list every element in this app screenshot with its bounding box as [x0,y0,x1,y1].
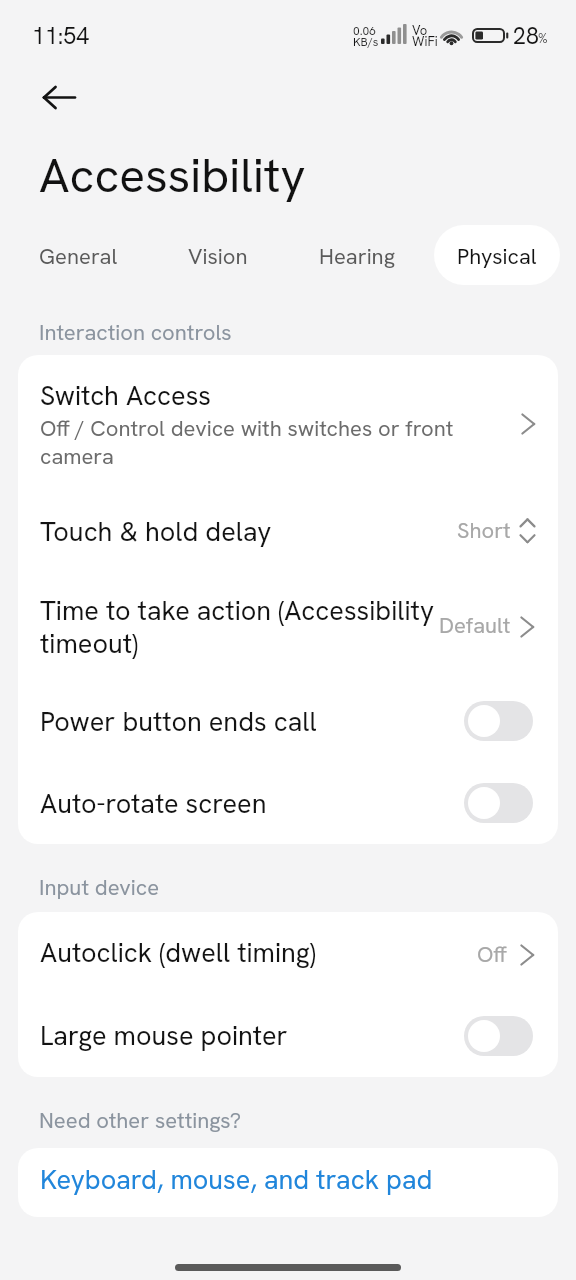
staticText: WiFi [412,33,438,50]
staticText: 0.06 [353,23,377,39]
staticText: Interaction controls [39,318,232,347]
button[interactable]: Power button ends call [464,701,533,741]
staticText: Switch Access [40,378,212,413]
staticText: Autoclick (dwell timing) [40,935,316,970]
staticText: Vo [412,22,428,39]
staticText: Input device [39,873,160,902]
staticText: Keyboard, mouse, and track pad [40,1162,433,1197]
staticText: Accessibility [39,144,306,207]
staticText: Need other settings? [39,1106,242,1135]
button[interactable]: Touch & hold delay [18,490,558,573]
staticText: % [538,30,548,47]
staticText: 11:54 [32,21,90,51]
staticText: Physical [457,242,537,271]
staticText: Off [477,940,507,969]
staticText: Auto-rotate screen [40,786,267,821]
button[interactable]: Large mouse pointer [18,995,558,1077]
staticText: Off / Control device with switches or fr… [40,415,460,471]
button[interactable]: Power button ends call [18,684,558,766]
staticText: Time to take action (Accessibility timeo… [40,595,436,661]
button[interactable]: Auto-rotate screen [18,766,558,844]
staticText: Large mouse pointer [40,1018,288,1053]
staticText: Default [439,611,511,640]
staticText: Hearing [319,242,395,271]
button[interactable]: Vision [155,225,280,285]
button[interactable]: General [16,225,141,285]
button[interactable]: Keyboard, mouse, and track pad [18,1148,558,1217]
button[interactable]: Autoclick (dwell timing) [18,912,558,995]
staticText: Touch & hold delay [40,514,272,549]
button[interactable]: Back [31,69,87,125]
button[interactable]: Physical [434,225,560,285]
button[interactable]: Switch Access [18,355,558,490]
staticText: General [39,242,118,271]
staticText: 28 [513,21,539,51]
staticText: KB/s [353,34,379,50]
button[interactable]: Hearing [294,225,420,285]
button[interactable]: Large mouse pointer [464,1016,533,1056]
staticText: Vision [188,242,248,271]
button[interactable]: Time to take action (Accessibility timeo… [18,573,558,684]
staticText: Power button ends call [40,704,317,739]
button[interactable]: Auto-rotate screen [464,783,533,823]
staticText: Short [457,516,511,545]
